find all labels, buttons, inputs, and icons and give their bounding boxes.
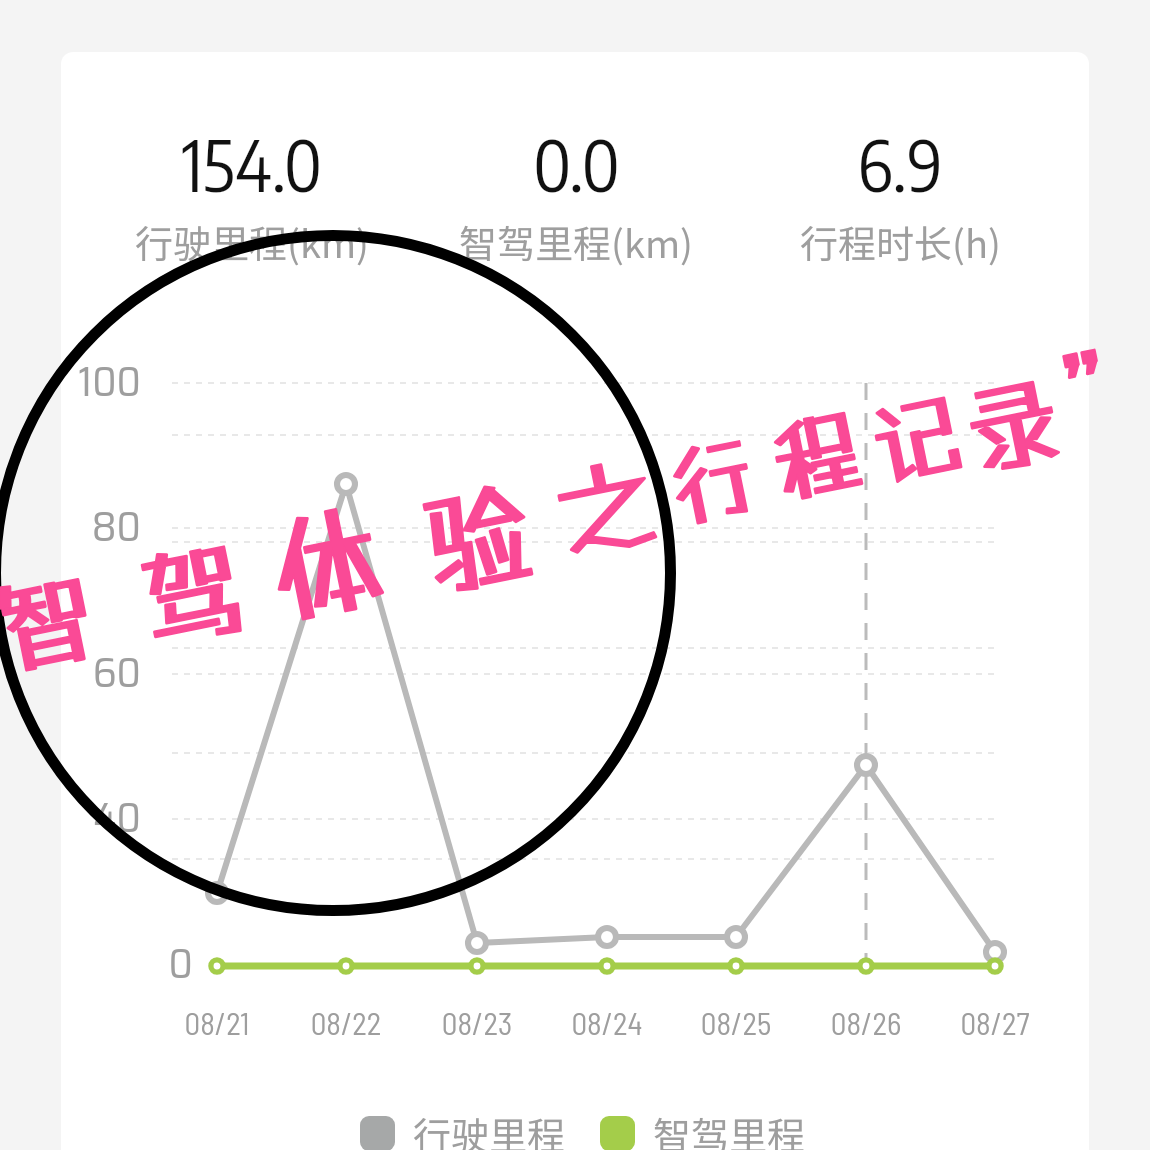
- staticText: 08/21: [147, 1004, 287, 1041]
- staticText: 08/26: [796, 1004, 936, 1041]
- button[interactable]: 0.0: [414, 120, 738, 269]
- staticText: 智驾里程: [653, 1106, 806, 1150]
- button[interactable]: 智驾里程: [600, 1102, 806, 1150]
- staticText: 08/23: [407, 1004, 547, 1041]
- staticText: 08/27: [925, 1004, 1065, 1041]
- staticText: 40: [0, 784, 141, 850]
- staticText: 行程时长(h): [800, 214, 1001, 269]
- other: Handwritten note: 智驾体验之行程记录: [0, 0, 1150, 1150]
- staticText: 0.0: [533, 120, 620, 207]
- staticText: 60: [0, 639, 141, 705]
- staticText: 154.0: [182, 120, 322, 207]
- staticText: 行驶里程(km): [135, 214, 369, 269]
- staticText: 80: [0, 493, 141, 559]
- button[interactable]: 154.0: [89, 120, 414, 269]
- button[interactable]: 行驶里程: [360, 1102, 566, 1150]
- staticText: 100: [0, 348, 141, 414]
- staticText: 0: [0, 930, 193, 996]
- button[interactable]: [61, 52, 1089, 1150]
- staticText: 08/22: [276, 1004, 416, 1041]
- staticText: 08/25: [666, 1004, 806, 1041]
- staticText: 6.9: [857, 120, 943, 207]
- staticText: 行驶里程: [413, 1106, 566, 1150]
- staticText: 08/24: [537, 1004, 677, 1041]
- staticText: 智驾里程(km): [459, 214, 693, 269]
- button[interactable]: 6.9: [738, 120, 1062, 269]
